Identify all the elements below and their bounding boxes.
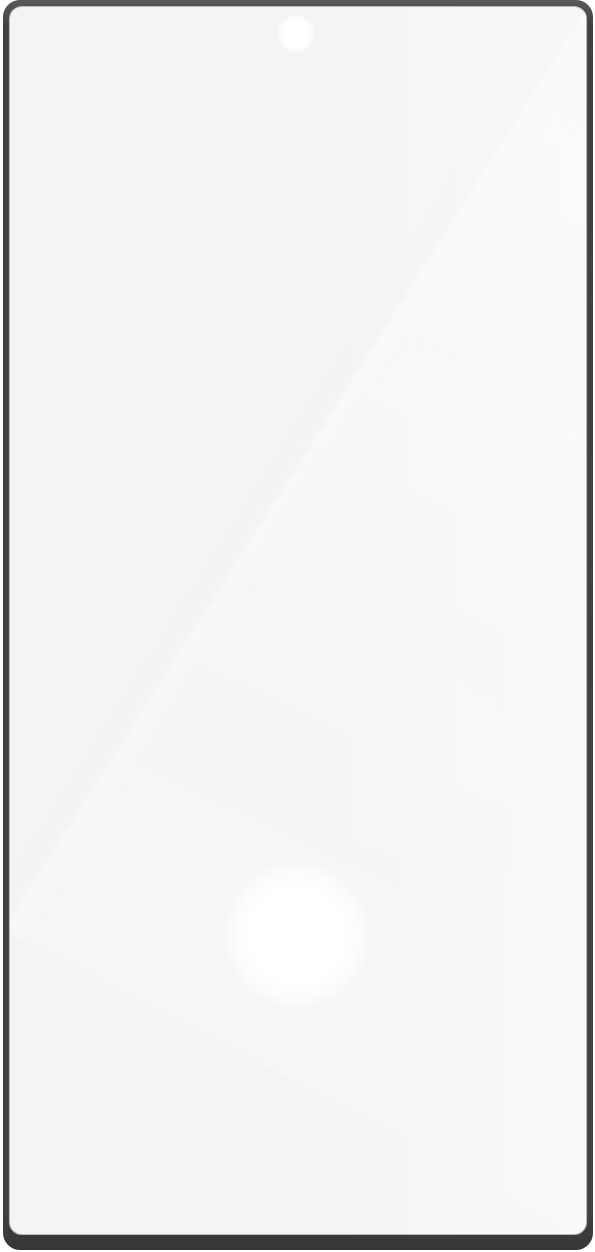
other: Phone device preview — [0, 0, 595, 1252]
